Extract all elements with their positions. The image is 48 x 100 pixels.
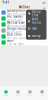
staticText: Yest xyxy=(44,30,47,31)
button[interactable]: Subscriptions xyxy=(0,9,48,15)
button[interactable]: Money xyxy=(26,32,46,40)
staticText: Me xyxy=(41,94,43,96)
button[interactable]: Contacts xyxy=(12,87,24,99)
staticText: 9:12 xyxy=(44,18,47,19)
staticText: Discover xyxy=(26,94,33,96)
button[interactable]: Bob Chen xyxy=(0,33,48,39)
staticText: + xyxy=(43,5,45,10)
staticText: 9:41 xyxy=(2,1,9,4)
staticText: Morning digest xyxy=(7,12,29,16)
button[interactable]: Add xyxy=(42,5,46,9)
button[interactable]: Chats xyxy=(0,87,12,99)
staticText: File Transfer xyxy=(7,15,23,18)
button[interactable]: Me xyxy=(36,87,48,99)
button[interactable]: Add Friend xyxy=(26,17,46,25)
staticText: Alice: sure xyxy=(7,30,22,34)
staticText: Group Chat xyxy=(32,10,41,17)
staticText: Add Friend xyxy=(32,17,41,24)
staticText: Call me later xyxy=(7,42,24,46)
staticText: ▃▂ ▮ xyxy=(42,2,45,3)
staticText: Mom xyxy=(7,39,13,42)
staticText: See you soon xyxy=(7,36,26,40)
staticText: Money xyxy=(32,34,40,38)
button[interactable]: File Transfer xyxy=(0,15,48,21)
button[interactable]: Group Chat xyxy=(26,10,46,17)
button[interactable]: Discover xyxy=(24,87,36,99)
staticText: report.pdf xyxy=(7,18,22,22)
staticText: Welcome back xyxy=(7,24,25,28)
staticText: Scan xyxy=(32,27,37,30)
button[interactable]: Mom xyxy=(0,39,48,45)
staticText: Sun xyxy=(44,42,47,43)
staticText: Subscriptions xyxy=(7,9,25,12)
staticText: Yest xyxy=(44,24,47,25)
staticText: WeChat Team xyxy=(7,21,24,24)
button[interactable]: WeChat Team xyxy=(0,21,48,27)
staticText: Contacts xyxy=(15,94,21,96)
staticText: Chats xyxy=(4,94,8,96)
staticText: Bob Chen xyxy=(7,33,22,36)
button[interactable]: Design Group xyxy=(0,27,48,33)
staticText: WeChat xyxy=(18,5,29,9)
button[interactable]: Scan xyxy=(26,25,46,32)
staticText: Design Group xyxy=(7,27,27,30)
staticText: 9:41 xyxy=(44,12,47,13)
staticText: Mon xyxy=(44,36,47,37)
